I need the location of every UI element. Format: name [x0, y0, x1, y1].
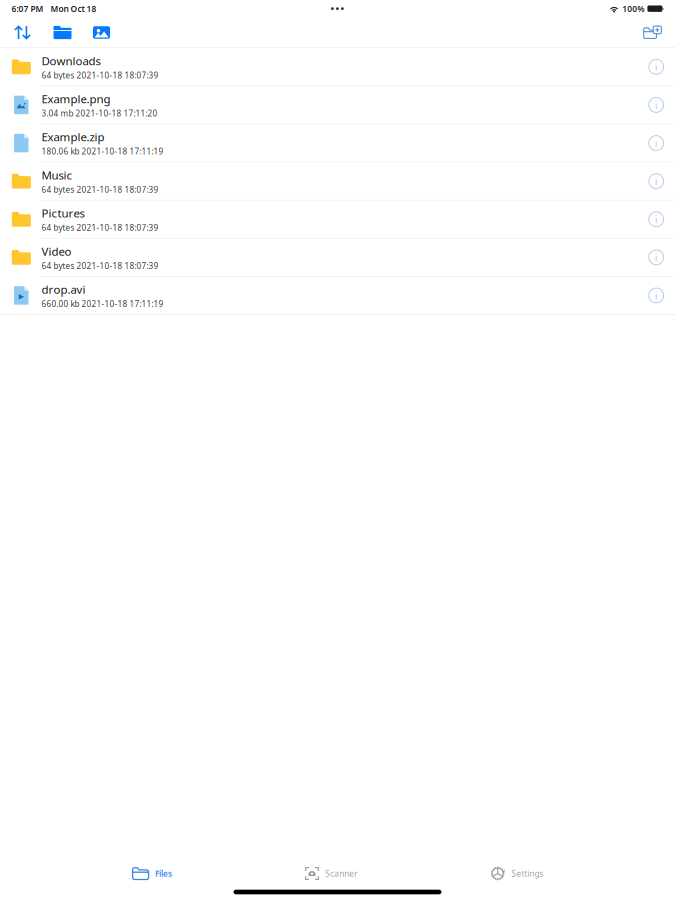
button[interactable]: Pictures	[0, 200, 675, 238]
button[interactable]: More Info about Video	[643, 242, 675, 272]
button[interactable]: drop.avi	[0, 277, 675, 314]
staticText: Example.png	[42, 91, 111, 107]
staticText: Downloads	[42, 53, 101, 68]
button[interactable]: More Info about Example.zip	[643, 128, 675, 158]
button[interactable]: Example.zip	[0, 124, 675, 162]
staticText: 64 bytes 2021-10-18 18:07:39	[42, 260, 159, 271]
button[interactable]: Folders	[43, 17, 82, 47]
button[interactable]: Photos	[82, 17, 121, 47]
button[interactable]: Downloads	[0, 48, 675, 86]
button[interactable]: New Folder	[634, 17, 671, 47]
button[interactable]: More Info about Downloads	[643, 52, 675, 82]
staticText: drop.avi	[42, 281, 86, 297]
staticText: 6:07 PM	[11, 3, 43, 14]
staticText: Settings	[511, 868, 543, 879]
staticText: 660.00 kb 2021-10-18 17:11:19	[42, 298, 164, 309]
button[interactable]: More Info about Pictures	[643, 204, 675, 234]
staticText: 180.06 kb 2021-10-18 17:11:19	[42, 146, 164, 157]
button[interactable]: Sort	[2, 17, 43, 47]
button[interactable]: More Info about Example.png	[643, 90, 675, 120]
staticText: Music	[42, 167, 73, 183]
staticText: 64 bytes 2021-10-18 18:07:39	[42, 184, 159, 195]
button[interactable]: Music	[0, 162, 675, 200]
button[interactable]: Settings	[490, 863, 543, 884]
staticText: Files	[155, 868, 172, 879]
staticText: Mon Oct 18	[50, 3, 96, 14]
button[interactable]: Files	[132, 863, 172, 884]
button[interactable]: Example.png	[0, 86, 675, 124]
staticText: Video	[42, 243, 72, 259]
staticText: Scanner	[325, 868, 357, 879]
button[interactable]: Video	[0, 239, 675, 276]
staticText: 64 bytes 2021-10-18 18:07:39	[42, 222, 159, 233]
staticText: 3.04 mb 2021-10-18 17:11:20	[42, 108, 158, 119]
button[interactable]: Scanner	[305, 863, 357, 884]
staticText: Example.zip	[42, 129, 105, 145]
staticText: 64 bytes 2021-10-18 18:07:39	[42, 70, 159, 81]
staticText: 100%	[622, 3, 644, 14]
staticText: Pictures	[42, 205, 85, 221]
button[interactable]: More Info about drop.avi	[643, 280, 675, 310]
button[interactable]: More Info about Music	[643, 166, 675, 196]
